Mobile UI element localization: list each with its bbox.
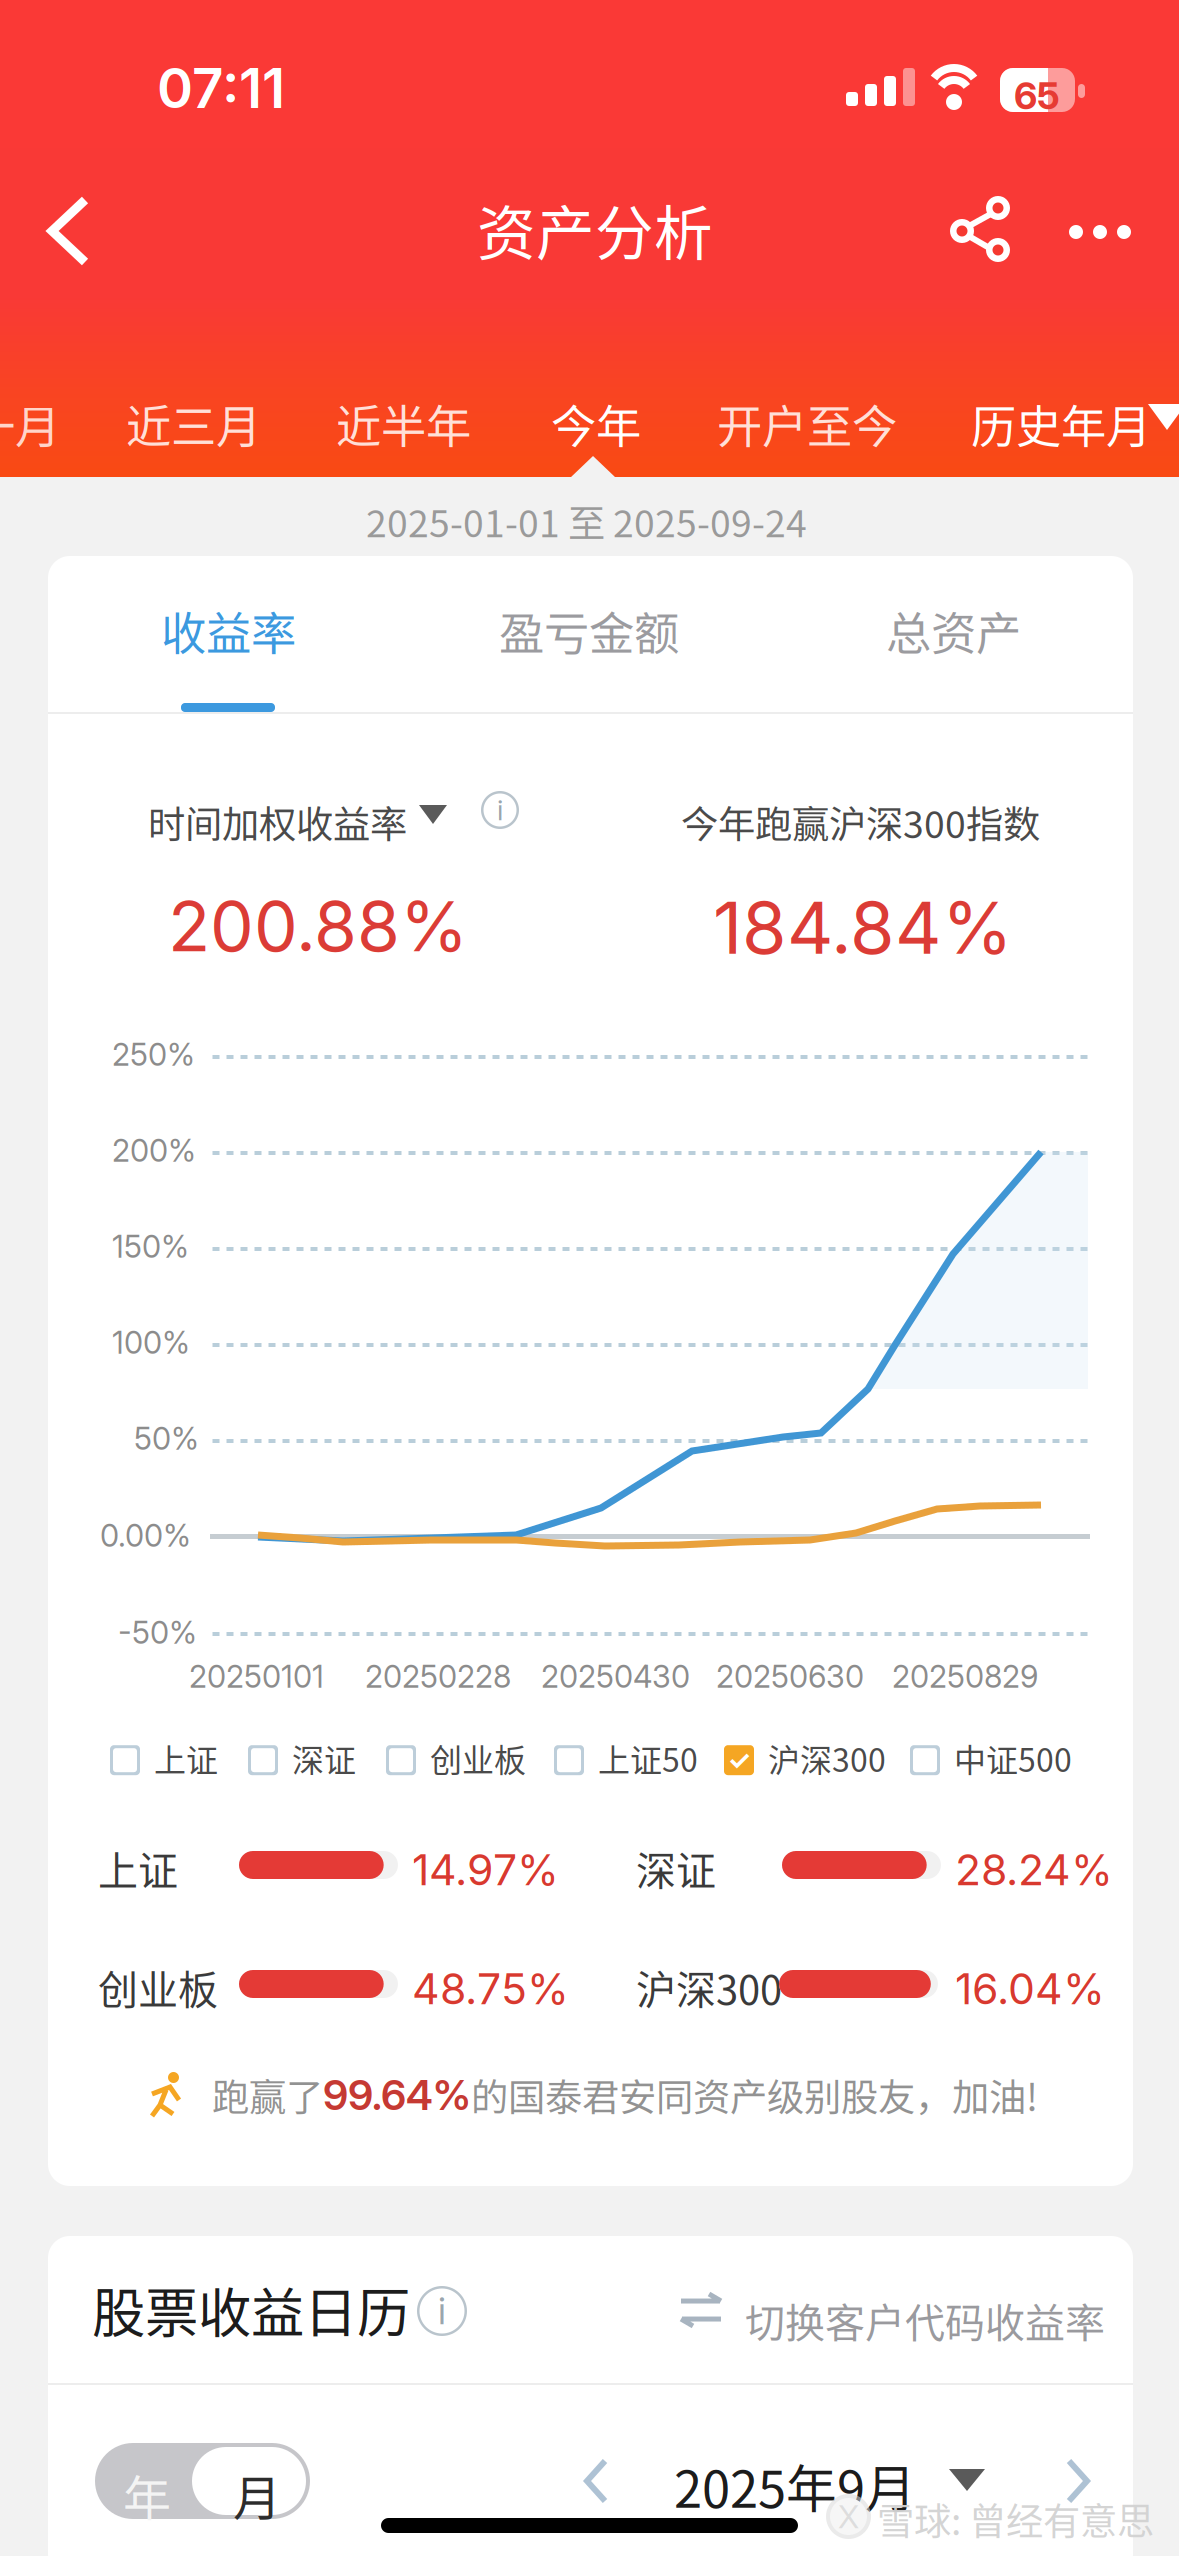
button[interactable]: 总资产 [886,598,1021,664]
staticText: 14.97% [412,1844,559,1896]
staticText: 0.00% [100,1517,191,1554]
staticText: 今年 [551,391,641,457]
button[interactable]: 切换客户代码收益率 [745,2291,1105,2349]
button[interactable]: More [1050,180,1150,280]
staticText: 07:11 [157,55,285,121]
staticText: 65 [1014,73,1060,118]
staticText: 上证50 [598,1735,698,1781]
staticText: 切换客户代码收益率 [745,2291,1105,2349]
button[interactable]: 收益率 [161,598,296,664]
staticText: 资产分析 [477,187,713,272]
staticText: 创业板 [98,1958,218,2016]
button[interactable]: 盈亏金额 [499,598,679,664]
staticText: 28.24% [955,1844,1113,1896]
staticText: -50% [118,1614,197,1651]
staticText: 盈亏金额 [499,598,679,664]
button[interactable]: 上证 [110,1737,218,1783]
staticText: 48.75% [412,1963,569,2015]
staticText: ✓ [727,1744,750,1776]
staticText: 2025-01-01 至 2025-09-24 [366,494,807,548]
staticText: 沪深300 [636,1958,782,2016]
button[interactable]: 年 [95,2443,310,2519]
button[interactable]: 近三月 [122,391,265,457]
staticText: 20250430 [541,1658,690,1695]
staticText: 184.84% [713,884,1013,971]
staticText: 跑赢了 [212,2068,323,2122]
staticText: 99.64% [323,2070,471,2120]
staticText: 50% [134,1420,199,1457]
staticText: 开户至今 [717,391,897,457]
button[interactable]: 创业板 [386,1737,526,1783]
button[interactable]: 历史年月 [967,391,1155,457]
staticText: 16.04% [955,1963,1105,2015]
staticText: 总资产 [886,598,1021,664]
button[interactable]: 中证500 [910,1737,1072,1783]
staticText: 2025年9月 [674,2449,916,2522]
staticText: 深证 [292,1735,356,1781]
staticText: 历史年月 [971,391,1151,457]
staticText: 100% [112,1324,190,1361]
staticText: 中证500 [954,1735,1072,1781]
staticText: 上证 [154,1735,218,1781]
staticText: i [438,2289,446,2333]
staticText: 上证 [98,1839,178,1897]
staticText: 20250228 [365,1658,511,1695]
staticText: 150% [112,1228,189,1265]
staticText: 250% [112,1036,195,1073]
staticText: 一月 [0,391,60,457]
button[interactable]: Next month [1066,2461,1090,2501]
button[interactable]: 一月 [0,391,64,457]
staticText: X [838,2497,859,2536]
staticText: 200% [112,1132,196,1169]
staticText: 近三月 [126,391,261,457]
button[interactable]: 开户至今 [713,391,901,457]
button[interactable]: 上证50 [554,1737,698,1783]
staticText: 的国泰君安同资产级别股友，加油! [471,2068,1038,2122]
staticText: 时间加权收益率 [148,795,407,849]
staticText: 沪深300 [768,1735,886,1781]
button[interactable]: Previous month [584,2461,608,2501]
staticText: 200.88% [168,884,468,968]
staticText: 今年跑赢沪深300指数 [681,795,1040,849]
button[interactable]: ✓ [724,1737,886,1783]
staticText: 20250101 [189,1658,324,1695]
button[interactable]: 今年 [547,391,645,457]
staticText: 20250630 [716,1658,864,1695]
button[interactable]: 深证 [248,1737,356,1783]
staticText: 收益率 [161,598,296,664]
staticText: 深证 [636,1839,716,1897]
staticText: 雪球: 曾经有意思 [877,2492,1154,2546]
button[interactable]: Share [930,178,1030,278]
staticText: 股票收益日历 [92,2271,410,2348]
button[interactable]: Back [20,175,130,287]
staticText: 创业板 [430,1735,526,1781]
staticText: 月 [233,2460,281,2529]
staticText: 20250829 [892,1658,1038,1695]
staticText: 年 [123,2460,171,2529]
staticText: 近半年 [336,391,471,457]
staticText: i [497,793,503,827]
button[interactable]: 近半年 [332,391,475,457]
